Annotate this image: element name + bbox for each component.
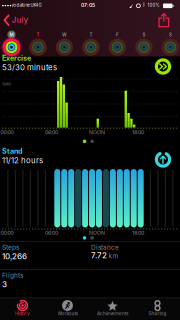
button[interactable]: F [104, 28, 130, 57]
staticText: 3 [2, 279, 7, 289]
staticText: Flights [2, 271, 23, 279]
staticText: 4G [35, 3, 41, 8]
button[interactable]: Achievements [90, 298, 135, 320]
staticText: NOON [89, 129, 105, 136]
staticText: vodafone UK [11, 3, 36, 8]
staticText: Sharing [148, 311, 166, 316]
staticText: History [15, 311, 30, 316]
button[interactable] [156, 11, 172, 28]
staticText: 53/30 minutes [2, 63, 57, 72]
staticText: 5MIN [2, 82, 11, 86]
staticText: Steps [2, 243, 19, 251]
staticText: ᛒ [142, 2, 145, 7]
staticText: 18:00 [132, 129, 144, 136]
staticText: F [116, 32, 119, 38]
staticText: 10,266 [2, 251, 27, 261]
staticText: km [108, 252, 118, 260]
staticText: 06:00 [45, 129, 58, 136]
staticText: T [36, 32, 39, 38]
button[interactable]: July [2, 12, 34, 28]
staticText: 18:00 [132, 230, 144, 236]
staticText: 00:00 [0, 230, 13, 236]
staticText: Exercise [2, 54, 31, 62]
staticText: Distance [91, 243, 119, 251]
button[interactable]: History [0, 298, 45, 320]
staticText: 11/12 hours [2, 156, 43, 165]
staticText: Stand [2, 147, 23, 155]
button[interactable]: S [131, 28, 157, 57]
staticText: 07:05 [81, 2, 95, 8]
staticText: M [9, 32, 13, 38]
button[interactable]: Workouts [45, 298, 90, 320]
staticText: T [89, 32, 92, 38]
staticText: S [142, 32, 145, 38]
button[interactable]: S [157, 28, 180, 57]
staticText: NOON [89, 230, 105, 236]
button[interactable]: T [25, 28, 51, 57]
staticText: Achievements [97, 311, 128, 316]
button[interactable]: Sharing [135, 298, 180, 320]
staticText: 7.72 [91, 250, 107, 260]
staticText: 100% [147, 3, 159, 8]
staticText: 06:00 [45, 230, 58, 236]
button[interactable]: T [78, 28, 104, 57]
staticText: S [169, 32, 172, 38]
staticText: July [11, 15, 28, 25]
button[interactable]: M [0, 28, 24, 57]
staticText: 00:00 [0, 129, 13, 136]
button[interactable]: W [51, 28, 77, 57]
staticText: Workouts [57, 311, 77, 316]
staticText: W [62, 32, 67, 38]
